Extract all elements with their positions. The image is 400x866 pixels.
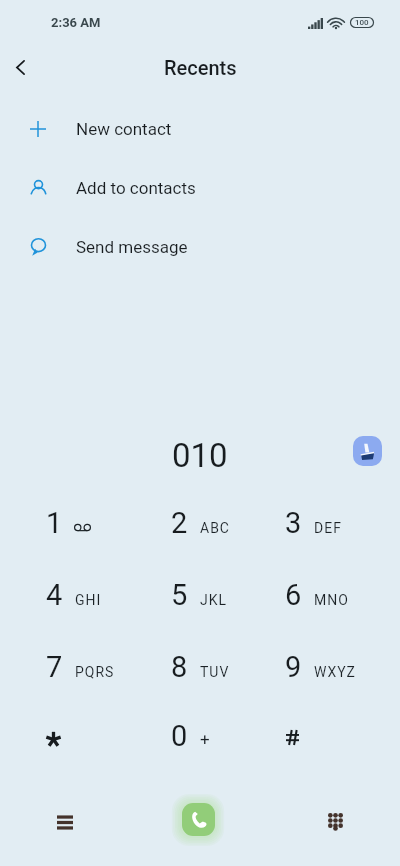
button[interactable]: New contact — [0, 99, 400, 158]
staticText: 2 — [171, 506, 188, 540]
button[interactable]: Call — [169, 794, 227, 844]
button[interactable]: 0 — [147, 703, 265, 769]
button[interactable]: 7 — [22, 634, 140, 700]
button[interactable]: Add to contacts — [0, 158, 400, 217]
button[interactable]: Dialpad — [306, 796, 364, 846]
button[interactable] — [22, 703, 140, 769]
staticText: Send message — [76, 237, 188, 257]
button[interactable]: 9 — [261, 634, 379, 700]
button[interactable] — [261, 703, 379, 769]
button[interactable]: Call log — [36, 797, 94, 847]
button[interactable]: 4 — [22, 562, 140, 628]
staticText: 8 — [171, 650, 188, 684]
staticText: 6 — [285, 578, 302, 612]
staticText: 0 — [171, 719, 188, 753]
button[interactable]: Back — [0, 47, 40, 87]
staticText: TUV — [200, 664, 230, 680]
staticText: 5 — [171, 578, 188, 612]
staticText: DEF — [314, 520, 342, 536]
staticText: 9 — [285, 650, 302, 684]
button[interactable]: Send message — [0, 217, 400, 276]
staticText: MNO — [314, 592, 349, 608]
staticText: + — [200, 729, 210, 749]
staticText: 010 — [172, 436, 228, 475]
button[interactable]: 6 — [261, 562, 379, 628]
staticText: 100 — [355, 18, 369, 27]
staticText: 7 — [46, 650, 63, 684]
staticText: Add to contacts — [76, 178, 196, 198]
staticText: 2:36 AM — [51, 15, 101, 30]
staticText: 3 — [285, 506, 302, 540]
button[interactable]: 8 — [147, 634, 265, 700]
staticText: WXYZ — [314, 664, 356, 680]
staticText: New contact — [76, 119, 172, 139]
staticText: 1 — [46, 506, 63, 540]
button[interactable]: 5 — [147, 562, 265, 628]
button[interactable]: 3 — [261, 490, 379, 556]
staticText: GHI — [75, 592, 102, 608]
button[interactable]: Clear — [353, 436, 382, 466]
staticText: ABC — [200, 520, 230, 536]
button[interactable]: 2 — [147, 490, 265, 556]
staticText: 4 — [46, 578, 63, 612]
button[interactable]: 1 — [22, 490, 140, 556]
staticText: PQRS — [75, 664, 115, 680]
staticText: Recents — [164, 56, 237, 79]
staticText: JKL — [200, 592, 228, 608]
